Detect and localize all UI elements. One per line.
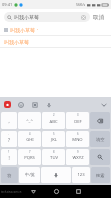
button[interactable]: 5 <box>42 131 65 147</box>
staticText: , <box>8 118 10 124</box>
button[interactable]: 叫我小草莓 <box>4 12 90 22</box>
staticText: 。 <box>8 132 11 135</box>
staticText: 123 <box>77 172 85 178</box>
button[interactable]: 叫我小草莓 <box>0 36 111 47</box>
staticText: MNO <box>72 137 83 143</box>
staticText: 3 <box>77 113 79 117</box>
button[interactable]: Input method <box>3 100 12 109</box>
button[interactable]: 中/英 <box>19 167 40 183</box>
staticText: 中/英 <box>25 172 35 178</box>
button[interactable]: Search <box>90 149 110 165</box>
staticText: ? <box>8 150 10 154</box>
staticText: TUV <box>50 155 58 161</box>
staticText: 叫我小草莓 <box>4 39 29 45</box>
staticText: tech.sina.com.cn <box>1 190 22 194</box>
button[interactable]: 8 <box>42 149 65 165</box>
staticText: 符 <box>7 173 12 178</box>
button[interactable]: Recents <box>73 186 84 197</box>
button[interactable]: Emoji <box>16 100 25 109</box>
staticText: 8 <box>53 150 55 154</box>
button[interactable]: 7 <box>18 149 41 165</box>
staticText: 7 <box>29 150 31 154</box>
staticText: PQRS <box>24 155 35 161</box>
staticText: 09:41 <box>2 2 13 7</box>
staticText: 56K/s <box>76 2 86 7</box>
button[interactable]: ^_^ <box>18 112 41 129</box>
staticText: 搜索 <box>96 173 105 178</box>
button[interactable]: Voice input <box>44 100 53 109</box>
staticText: 叫我小草莓 <box>10 27 35 33</box>
staticText: 叫我小草莓 <box>14 14 39 20</box>
button[interactable]: ? <box>1 149 17 165</box>
staticText: DEF <box>74 119 82 125</box>
staticText: ! <box>8 155 10 161</box>
button[interactable]: 3 <box>66 112 89 129</box>
button[interactable]: 取消 <box>90 11 107 23</box>
staticText: 2 <box>53 113 55 117</box>
staticText: JKL <box>51 137 57 143</box>
button[interactable]: 符 <box>1 167 18 183</box>
staticText: 清空 <box>96 137 105 142</box>
button[interactable]: , <box>1 112 17 129</box>
button[interactable]: Clear <box>80 14 87 21</box>
staticText: 6 <box>77 132 79 136</box>
button[interactable]: Backspace <box>90 112 110 129</box>
staticText: · <box>37 26 39 33</box>
button[interactable]: Back <box>28 186 39 197</box>
staticText: ABC <box>49 119 58 125</box>
button[interactable]: 。 <box>1 131 17 147</box>
staticText: GHI <box>26 137 34 143</box>
button[interactable]: 搜索 <box>91 167 110 183</box>
staticText: WXYZ <box>72 155 84 161</box>
button[interactable]: 9 <box>66 149 89 165</box>
staticText: 9 <box>77 150 79 154</box>
staticText: 4 <box>29 132 31 136</box>
staticText: ^_^ <box>26 118 33 124</box>
button[interactable]: Space <box>41 167 71 183</box>
button[interactable]: Home <box>51 186 62 197</box>
staticText: 5 <box>53 132 55 136</box>
button[interactable]: Clipboard <box>30 100 39 109</box>
staticText: ? <box>8 137 10 143</box>
button[interactable]: 2 <box>42 112 65 129</box>
button[interactable]: 123 <box>72 167 90 183</box>
button[interactable]: 4 <box>18 131 41 147</box>
staticText: 取消 <box>93 14 104 21</box>
button[interactable]: 6 <box>66 131 89 147</box>
button[interactable]: 叫我小草莓 <box>0 24 111 35</box>
button[interactable]: Hide keyboard <box>99 100 108 109</box>
button[interactable]: 清空 <box>90 131 110 147</box>
